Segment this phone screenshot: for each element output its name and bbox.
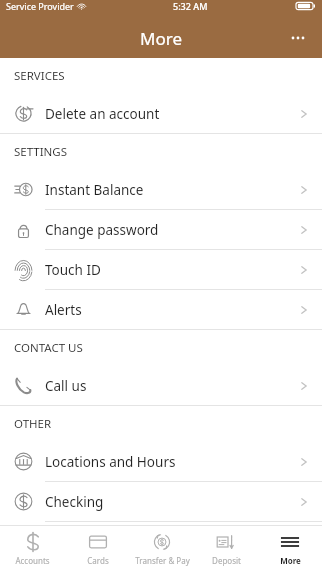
staticText: Locations and Hours bbox=[45, 453, 176, 471]
staticText: Delete an account bbox=[45, 105, 160, 123]
button[interactable]: Delete an account bbox=[0, 94, 322, 133]
staticText: Checking bbox=[45, 493, 104, 511]
button[interactable]: Change password bbox=[0, 210, 322, 249]
staticText: Change password bbox=[45, 221, 159, 239]
staticText: 5:32 AM bbox=[173, 0, 208, 12]
button[interactable]: More bbox=[258, 526, 322, 572]
button[interactable]: Cards bbox=[65, 526, 130, 572]
staticText: SERVICES bbox=[14, 68, 65, 84]
button[interactable]: Locations and Hours bbox=[0, 442, 322, 481]
staticText: Call us bbox=[45, 377, 87, 395]
button[interactable]: Transfer & Pay bbox=[130, 526, 194, 572]
staticText: Service Provider bbox=[6, 0, 74, 12]
staticText: Touch ID bbox=[45, 261, 101, 279]
button[interactable]: Alerts bbox=[0, 290, 322, 329]
staticText: More bbox=[140, 27, 182, 50]
button[interactable]: Checking bbox=[0, 482, 322, 521]
button[interactable]: Accounts bbox=[0, 526, 65, 572]
button[interactable]: Deposit bbox=[194, 526, 258, 572]
staticText: CONTACT US bbox=[14, 340, 83, 356]
staticText: Deposit bbox=[212, 555, 241, 566]
staticText: SETTINGS bbox=[14, 144, 68, 160]
staticText: Alerts bbox=[45, 301, 82, 319]
button[interactable]: Call us bbox=[0, 366, 322, 405]
staticText: More bbox=[280, 555, 301, 566]
staticText: OTHER bbox=[14, 416, 52, 432]
staticText: Cards bbox=[87, 555, 109, 566]
button[interactable]: Instant Balance bbox=[0, 170, 322, 209]
button[interactable]: More options bbox=[280, 20, 316, 56]
staticText: Transfer & Pay bbox=[135, 555, 190, 566]
staticText: Accounts bbox=[15, 555, 50, 566]
button[interactable]: Touch ID bbox=[0, 250, 322, 289]
staticText: Instant Balance bbox=[45, 181, 144, 199]
